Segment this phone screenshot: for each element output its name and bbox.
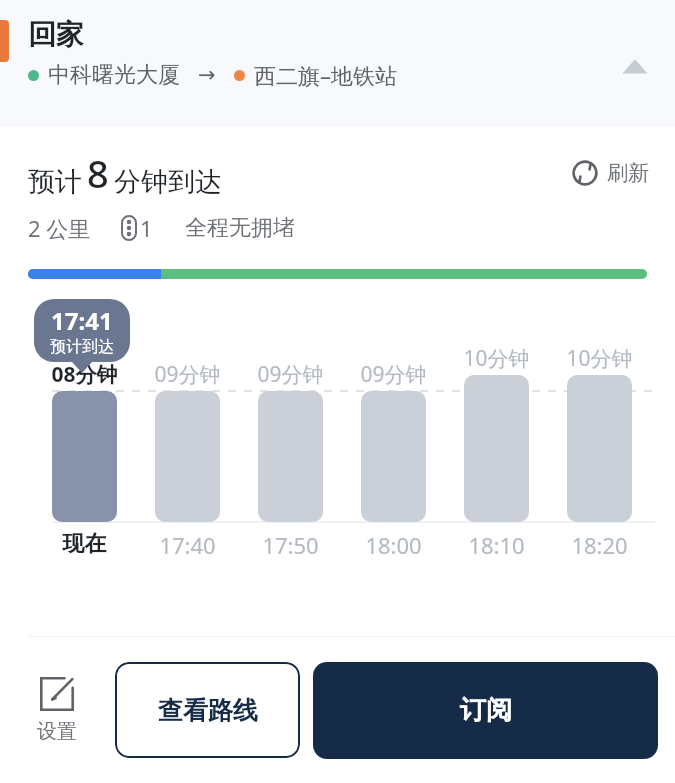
staticText: 预计 [28, 165, 82, 199]
staticText: 订阅 [460, 694, 512, 727]
button[interactable]: 订阅 [313, 662, 658, 759]
staticText: 17:41 [51, 304, 113, 337]
staticText: 分钟到达 [114, 165, 222, 199]
staticText: 09分钟 [151, 360, 224, 389]
staticText: 09分钟 [254, 360, 327, 389]
staticText: 全程无拥堵 [185, 214, 295, 242]
staticText: 10分钟 [563, 344, 636, 373]
staticText: 8 [87, 147, 109, 199]
staticText: 18:10 [460, 530, 533, 560]
staticText: 10分钟 [460, 344, 533, 373]
staticText: 17:40 [151, 530, 224, 560]
staticText: 刷新 [607, 160, 649, 186]
staticText: 08分钟 [48, 360, 121, 389]
button[interactable]: 查看路线 [115, 662, 300, 758]
button[interactable]: 设置 [26, 673, 88, 748]
button[interactable]: Collapse [615, 46, 655, 86]
staticText: 1 [140, 213, 153, 243]
staticText: 2 公里 [28, 213, 91, 243]
staticText: 查看路线 [158, 695, 258, 726]
staticText: 中科曙光大厦 [48, 61, 180, 89]
staticText: 09分钟 [357, 360, 430, 389]
staticText: 西二旗–地铁站 [254, 60, 398, 90]
other: 设置 [40, 677, 74, 711]
staticText: 设置 [37, 719, 77, 744]
staticText: 预计到达 [50, 337, 114, 357]
staticText: 18:00 [357, 530, 430, 560]
button[interactable]: 刷新 [565, 153, 655, 193]
staticText: → [198, 63, 216, 87]
staticText: 17:50 [254, 530, 327, 560]
staticText: 18:20 [563, 530, 636, 560]
staticText: 回家 [28, 17, 84, 52]
staticText: 现在 [48, 530, 121, 558]
